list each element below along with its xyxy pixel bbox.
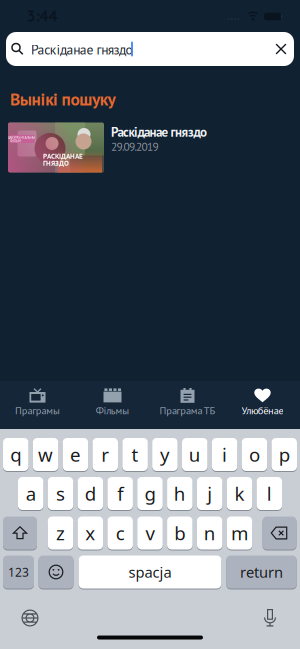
button[interactable]: q xyxy=(3,437,28,471)
staticText: Фільмы xyxy=(96,404,129,417)
staticText: Улюбёнае xyxy=(241,404,283,417)
button[interactable]: w xyxy=(33,437,58,471)
button[interactable]: x xyxy=(78,516,103,550)
staticText: spacja xyxy=(128,562,171,582)
staticText: 3:44 xyxy=(26,5,57,26)
staticText: w xyxy=(38,442,53,467)
button[interactable]: k xyxy=(227,476,252,510)
button[interactable]: 123 xyxy=(3,555,34,589)
button[interactable]: Фільмы xyxy=(75,381,150,429)
button[interactable]: f xyxy=(107,476,133,510)
staticText: k xyxy=(234,481,244,506)
staticText: a xyxy=(26,481,36,506)
button[interactable]: e xyxy=(63,437,88,471)
staticText: r xyxy=(101,442,109,467)
staticText: e xyxy=(70,442,81,467)
button[interactable] xyxy=(262,516,296,550)
button[interactable]: b xyxy=(167,516,193,550)
button[interactable] xyxy=(255,603,285,633)
button[interactable]: m xyxy=(227,516,252,550)
button[interactable]: ДАКУМЕНТАЛЬНЫ xyxy=(0,122,300,172)
staticText: ГНЯЗДО xyxy=(43,158,69,168)
staticText: l xyxy=(267,481,272,506)
button[interactable]: u xyxy=(182,437,207,471)
staticText: m xyxy=(231,521,248,545)
staticText: 29.09.2019 xyxy=(111,139,158,154)
staticText: Вынікі пошуку xyxy=(10,88,116,110)
button[interactable] xyxy=(3,516,37,550)
staticText: Раскіданае гняздо xyxy=(31,41,133,58)
button[interactable]: o xyxy=(242,437,267,471)
button[interactable]: j xyxy=(197,476,222,510)
staticText: f xyxy=(117,481,123,506)
button[interactable]: g xyxy=(137,476,163,510)
button[interactable]: return xyxy=(226,555,297,589)
button[interactable]: Раскіданае гняздо xyxy=(6,32,294,66)
button[interactable]: Праграма ТБ xyxy=(150,381,225,429)
staticText: j xyxy=(207,481,212,506)
staticText: q xyxy=(10,442,21,467)
staticText: c xyxy=(116,521,125,545)
button[interactable] xyxy=(38,555,73,589)
button[interactable]: i xyxy=(212,437,237,471)
button[interactable]: n xyxy=(197,516,222,550)
staticText: d xyxy=(85,481,96,506)
staticText: y xyxy=(160,442,170,467)
button[interactable]: h xyxy=(167,476,193,510)
staticText: g xyxy=(144,481,155,506)
staticText: t xyxy=(132,442,139,467)
staticText: v xyxy=(145,521,154,545)
button[interactable]: Улюбёнае xyxy=(225,381,300,429)
staticText: 123 xyxy=(8,564,29,580)
staticText: ДАКУМЕНТАЛЬНЫ xyxy=(7,135,35,140)
button[interactable]: z xyxy=(48,516,73,550)
staticText: z xyxy=(56,521,65,545)
staticText: s xyxy=(56,481,65,506)
staticText: ФІЛЬМ xyxy=(10,139,21,143)
staticText: p xyxy=(279,442,290,467)
button[interactable]: r xyxy=(92,437,118,471)
staticText: i xyxy=(222,442,227,467)
button[interactable]: spacja xyxy=(79,555,221,589)
button[interactable]: v xyxy=(137,516,163,550)
staticText: return xyxy=(240,562,283,582)
button[interactable]: p xyxy=(271,437,297,471)
staticText: Праграмы xyxy=(15,404,60,417)
staticText: x xyxy=(85,521,95,545)
button[interactable]: s xyxy=(48,476,73,510)
staticText: b xyxy=(174,521,185,545)
staticText: Праграма ТБ xyxy=(159,404,215,417)
staticText: Раскіданае гняздо xyxy=(111,123,207,140)
staticText: h xyxy=(174,481,186,506)
button[interactable]: d xyxy=(78,476,103,510)
button[interactable]: Праграмы xyxy=(0,381,75,429)
staticText: o xyxy=(249,442,260,467)
button[interactable]: a xyxy=(18,476,43,510)
button[interactable]: l xyxy=(257,476,282,510)
button[interactable]: t xyxy=(122,437,148,471)
staticText: u xyxy=(189,442,201,467)
button[interactable]: c xyxy=(107,516,133,550)
staticText: n xyxy=(204,521,216,545)
staticText: РАСКІДАНАЕ xyxy=(43,151,83,161)
button[interactable]: y xyxy=(152,437,178,471)
button[interactable] xyxy=(15,603,45,633)
